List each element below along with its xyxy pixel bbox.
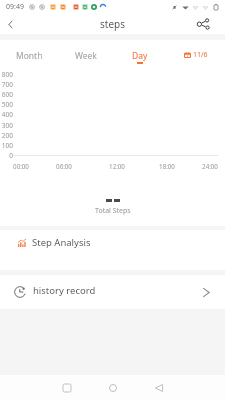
staticText: 100 [1,141,13,150]
staticText: 0 [9,151,13,160]
button[interactable]: history record [0,275,225,309]
staticText: 600 [1,90,13,99]
button[interactable]: Back [149,378,169,398]
staticText: Step Analysis [32,236,91,249]
staticText: 18:00 [159,162,175,170]
staticText: 500 [1,100,13,109]
staticText: 09:49 [6,2,24,12]
button[interactable]: Back [0,14,20,34]
staticText: history record [33,284,96,297]
staticText: 300 [1,121,13,130]
staticText: 06:00 [56,162,72,170]
button[interactable]: 11/6 [184,50,208,60]
staticText: 24:00 [202,162,218,170]
button[interactable]: Week [75,50,97,62]
button[interactable]: Recent apps [57,378,77,398]
staticText: Week [75,50,97,62]
staticText: 12:00 [109,162,125,170]
button[interactable]: Step Analysis [0,230,225,256]
staticText: 200 [1,131,13,140]
button[interactable]: Month [16,50,43,62]
button[interactable]: Home [103,378,123,398]
staticText: Day [132,50,148,62]
staticText: Total Steps [95,206,131,216]
staticText: 11/6 [193,50,208,60]
staticText: 400 [1,110,13,119]
button[interactable]: Day [132,50,148,64]
staticText: steps [100,17,125,31]
staticText: 00:00 [13,162,29,170]
button[interactable]: Share [193,14,213,34]
staticText: Month [16,50,43,62]
staticText: 800 [1,70,13,79]
staticText: 700 [1,80,13,89]
